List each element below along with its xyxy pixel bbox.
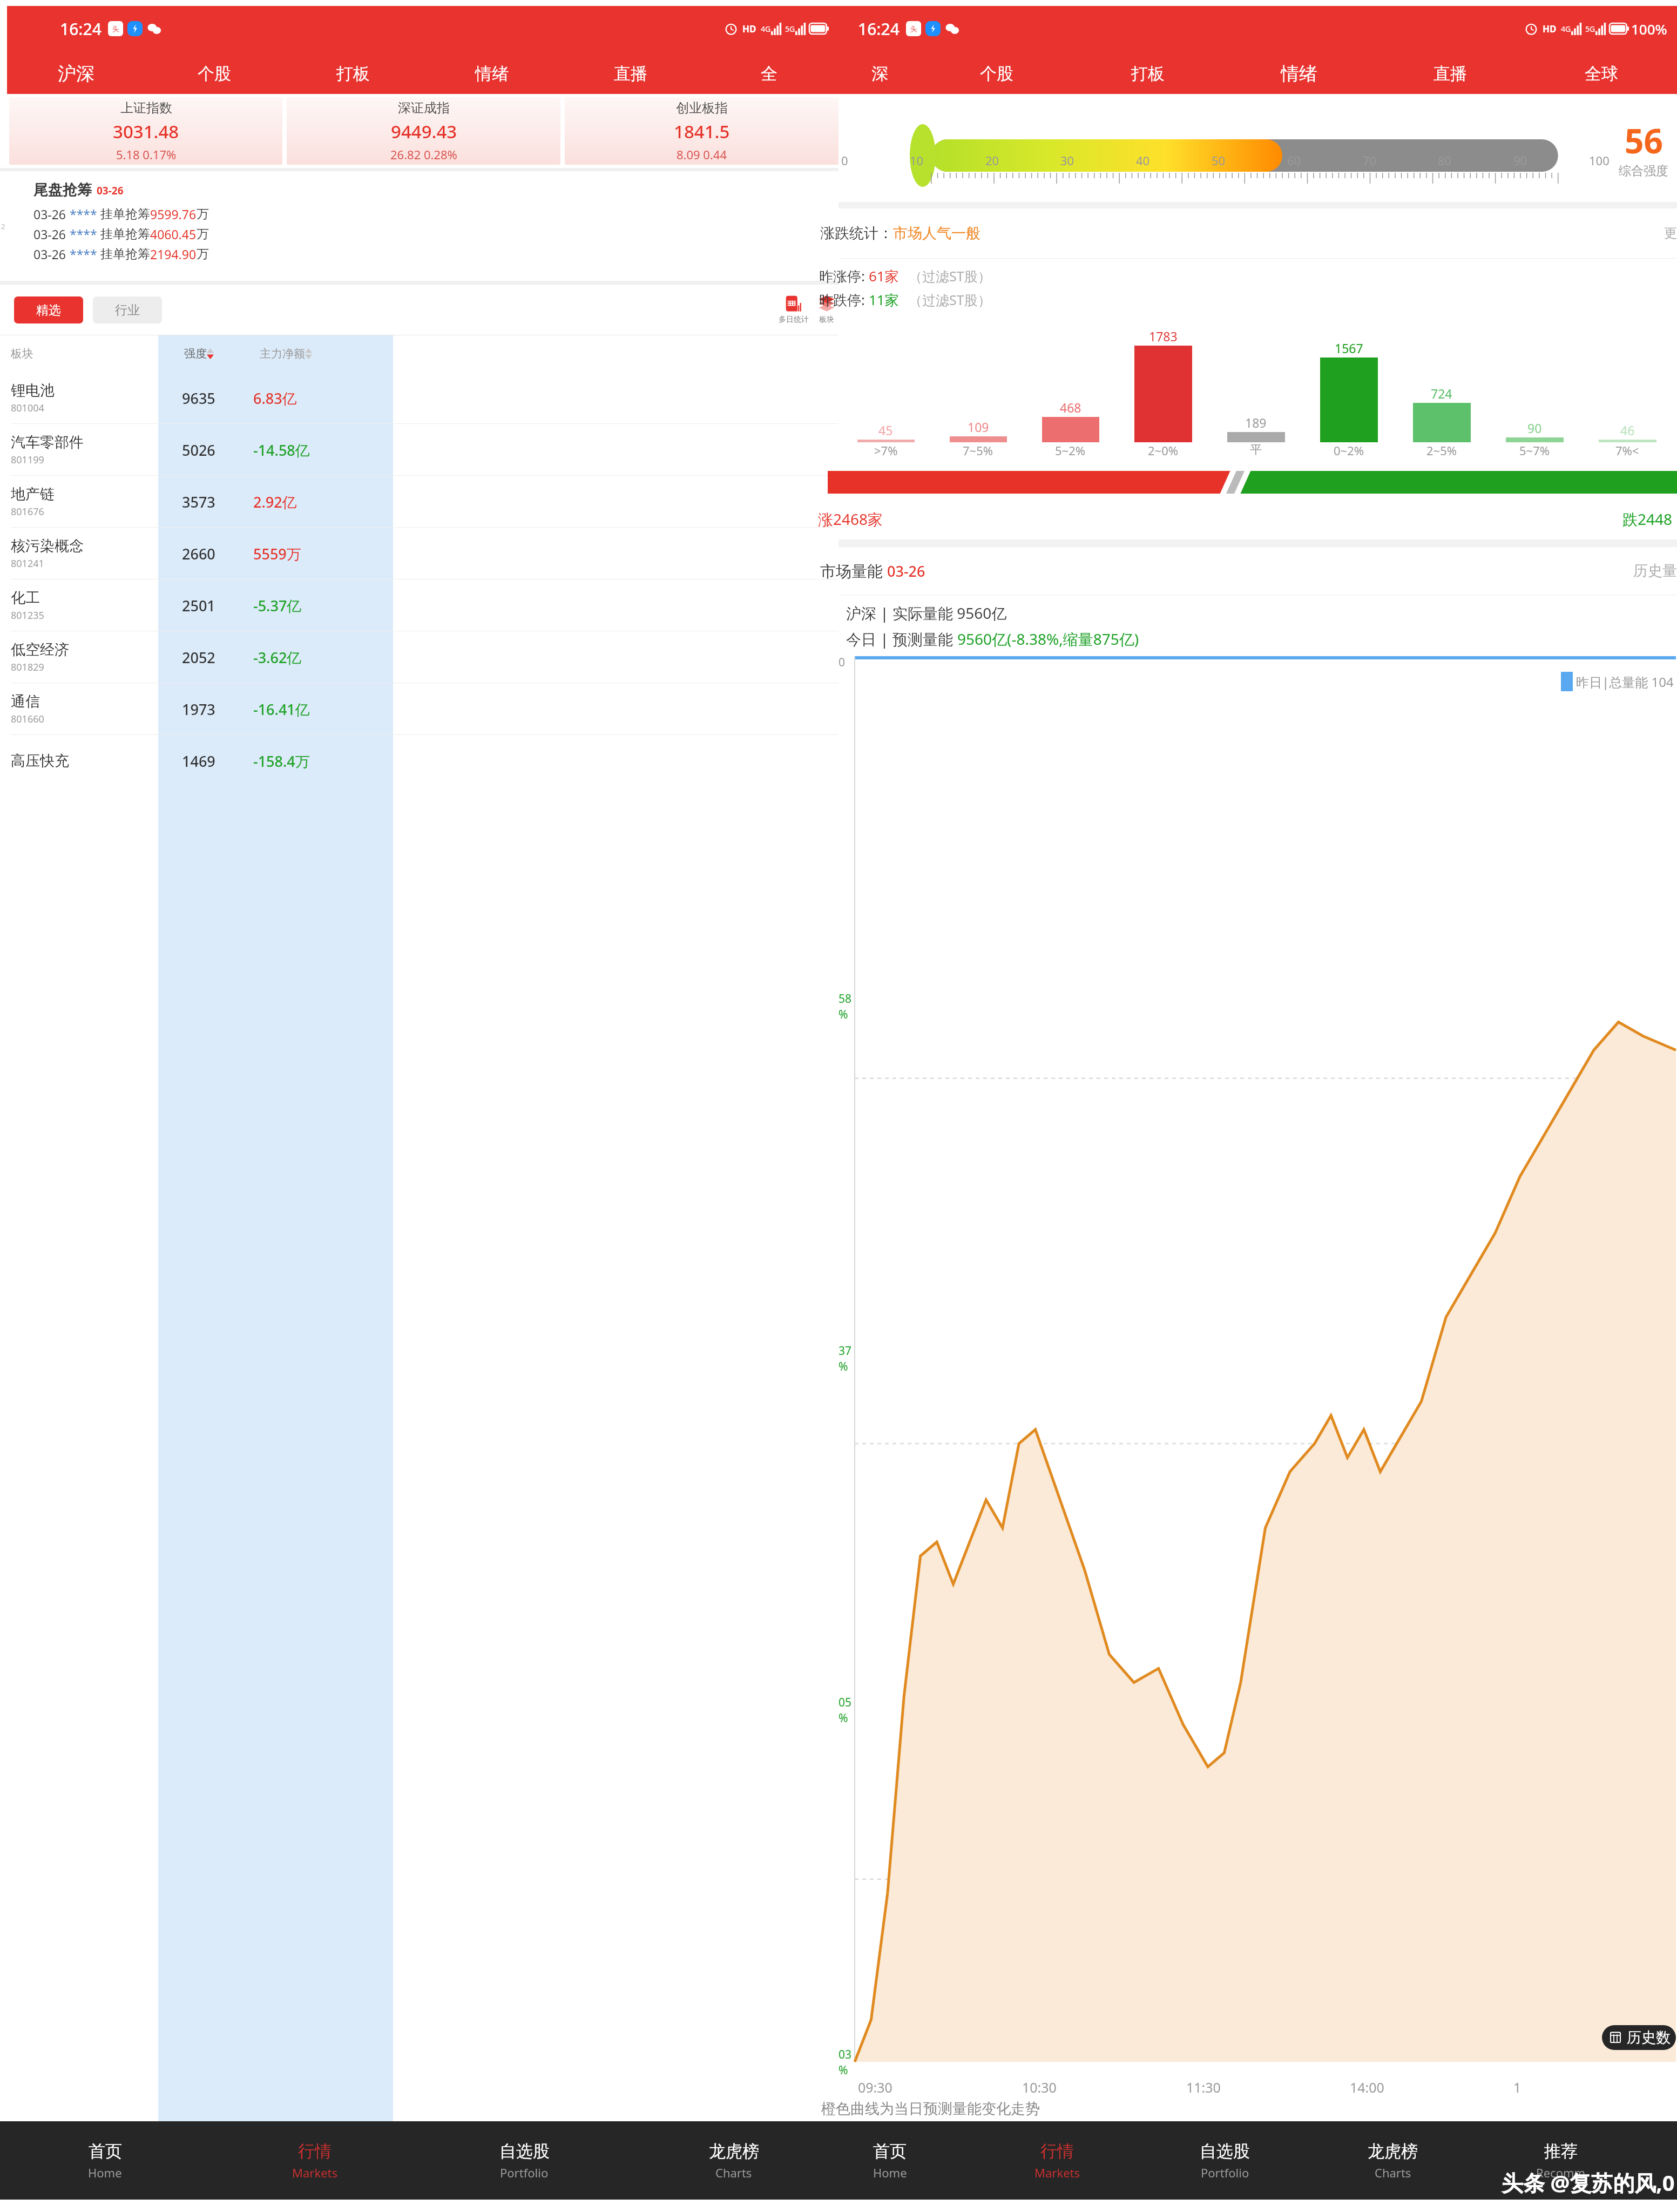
staticText: 03-26 bbox=[33, 226, 70, 242]
staticText: 1469 bbox=[182, 751, 215, 771]
button[interactable]: 精选 bbox=[14, 296, 83, 323]
button[interactable]: 全 bbox=[700, 53, 838, 94]
button[interactable]: 多日统计 bbox=[777, 295, 810, 325]
button[interactable]: 推荐 bbox=[1477, 2121, 1645, 2200]
staticText: 7%< bbox=[1615, 442, 1639, 458]
staticText: 5026 bbox=[182, 440, 215, 460]
staticText: HD bbox=[742, 23, 756, 35]
button[interactable]: 个股 bbox=[921, 53, 1072, 94]
staticText: 首页 bbox=[89, 2141, 122, 2162]
button[interactable]: 自选股 bbox=[420, 2121, 629, 2200]
button[interactable]: 地产链 bbox=[0, 476, 838, 528]
staticText: 8.09 0.44 bbox=[677, 146, 727, 163]
button[interactable]: 龙虎榜 bbox=[629, 2121, 838, 2200]
staticText: 801235 bbox=[11, 609, 44, 622]
staticText: Markets bbox=[292, 2164, 338, 2181]
staticText: 自选股 bbox=[499, 2141, 550, 2162]
staticText: 4G bbox=[1561, 24, 1571, 34]
button[interactable]: 高压快充 bbox=[0, 735, 838, 787]
button[interactable]: 化工 bbox=[0, 579, 838, 631]
staticText: 低空经济 bbox=[11, 640, 69, 659]
staticText: 109 bbox=[968, 419, 989, 435]
button[interactable]: 行业 bbox=[93, 296, 162, 323]
staticText: **** bbox=[70, 206, 100, 222]
button[interactable]: 上证指数 bbox=[9, 97, 282, 165]
staticText: 挂单抢筹 bbox=[100, 206, 150, 222]
button[interactable]: 打板 bbox=[1072, 53, 1223, 94]
staticText: 1 bbox=[1513, 2078, 1522, 2096]
staticText: 全球 bbox=[1585, 63, 1618, 84]
button[interactable]: 通信 bbox=[0, 683, 838, 735]
button[interactable]: 个股 bbox=[145, 53, 283, 94]
button[interactable]: 自选股 bbox=[1141, 2121, 1309, 2200]
staticText: 深证成指 bbox=[398, 100, 450, 116]
staticText: Portfolio bbox=[500, 2164, 549, 2181]
staticText: 历史数 bbox=[1627, 2028, 1671, 2047]
staticText: 1567 bbox=[1335, 340, 1363, 356]
staticText: Recomm bbox=[1536, 2164, 1586, 2181]
staticText: 30 bbox=[1060, 152, 1074, 168]
staticText: -3.62亿 bbox=[253, 648, 302, 667]
staticText: 打板 bbox=[336, 63, 370, 84]
button[interactable]: 汽车零部件 bbox=[0, 424, 838, 476]
staticText: 龙虎榜 bbox=[709, 2141, 759, 2162]
button[interactable]: 尾盘抢筹 bbox=[16, 173, 838, 278]
staticText: 情绪 bbox=[1281, 62, 1317, 85]
staticText: 个股 bbox=[980, 63, 1013, 84]
staticText: 主力净额 bbox=[260, 347, 305, 361]
button[interactable]: 行情 bbox=[973, 2121, 1141, 2200]
staticText: 平 bbox=[1250, 442, 1262, 457]
staticText: 03% bbox=[838, 2047, 855, 2078]
button[interactable]: 情绪 bbox=[422, 53, 561, 94]
staticText: 创业板指 bbox=[676, 100, 728, 116]
button[interactable]: 首页 bbox=[806, 2121, 973, 2200]
button[interactable]: 强度 bbox=[158, 347, 239, 361]
staticText: 万 bbox=[197, 246, 209, 262]
button[interactable]: 直播 bbox=[1375, 53, 1526, 94]
button[interactable]: 全球 bbox=[1526, 53, 1677, 94]
staticText: 189 bbox=[1245, 414, 1267, 431]
button[interactable]: 直播 bbox=[561, 53, 700, 94]
staticText: 万 bbox=[197, 206, 209, 222]
staticText: 90 bbox=[1513, 152, 1527, 168]
staticText: 801660 bbox=[11, 712, 44, 726]
button[interactable]: 历史数 bbox=[1607, 2028, 1671, 2047]
staticText: 26.82 0.28% bbox=[390, 146, 457, 163]
staticText: 挂单抢筹 bbox=[100, 246, 150, 262]
staticText: 市场量能 bbox=[820, 560, 887, 582]
staticText: 46 bbox=[1620, 422, 1635, 439]
staticText: 行情 bbox=[1040, 2141, 1074, 2162]
button[interactable]: 创业板指 bbox=[565, 97, 838, 165]
button[interactable]: 深 bbox=[838, 53, 921, 94]
staticText: 核污染概念 bbox=[11, 537, 84, 555]
staticText: 40 bbox=[1136, 152, 1150, 168]
staticText: 2501 bbox=[182, 596, 215, 616]
button[interactable]: 打板 bbox=[283, 53, 422, 94]
button[interactable]: 锂电池 bbox=[0, 372, 838, 424]
staticText: 2~0% bbox=[1148, 442, 1179, 458]
button[interactable]: 首页 bbox=[0, 2121, 210, 2200]
staticText: 11:30 bbox=[1186, 2078, 1221, 2096]
button[interactable]: 板块 bbox=[816, 295, 837, 325]
button[interactable]: 龙虎榜 bbox=[1309, 2121, 1477, 2200]
button[interactable]: 主力净额 bbox=[260, 347, 312, 361]
button[interactable]: 行情 bbox=[210, 2121, 420, 2200]
staticText: 9449.43 bbox=[391, 119, 457, 144]
button[interactable]: 低空经济 bbox=[0, 631, 838, 683]
staticText: 历史量 bbox=[1633, 562, 1677, 580]
button[interactable]: 深证成指 bbox=[287, 97, 560, 165]
staticText: 头 bbox=[112, 24, 119, 33]
staticText: **** bbox=[70, 226, 100, 242]
button[interactable]: 情绪 bbox=[1223, 53, 1375, 94]
button[interactable]: 沪深 bbox=[7, 53, 145, 94]
staticText: 5~2% bbox=[1055, 442, 1086, 458]
staticText: 情绪 bbox=[475, 63, 509, 84]
button[interactable]: 核污染概念 bbox=[0, 528, 838, 579]
staticText: 10 bbox=[910, 152, 924, 168]
staticText: 精选 bbox=[36, 302, 61, 318]
staticText: 5G bbox=[785, 24, 795, 34]
staticText: 20 bbox=[985, 152, 999, 168]
staticText: 板块 bbox=[11, 347, 158, 361]
staticText: 涨2468家 bbox=[818, 509, 883, 529]
staticText: 通信 bbox=[11, 692, 40, 711]
